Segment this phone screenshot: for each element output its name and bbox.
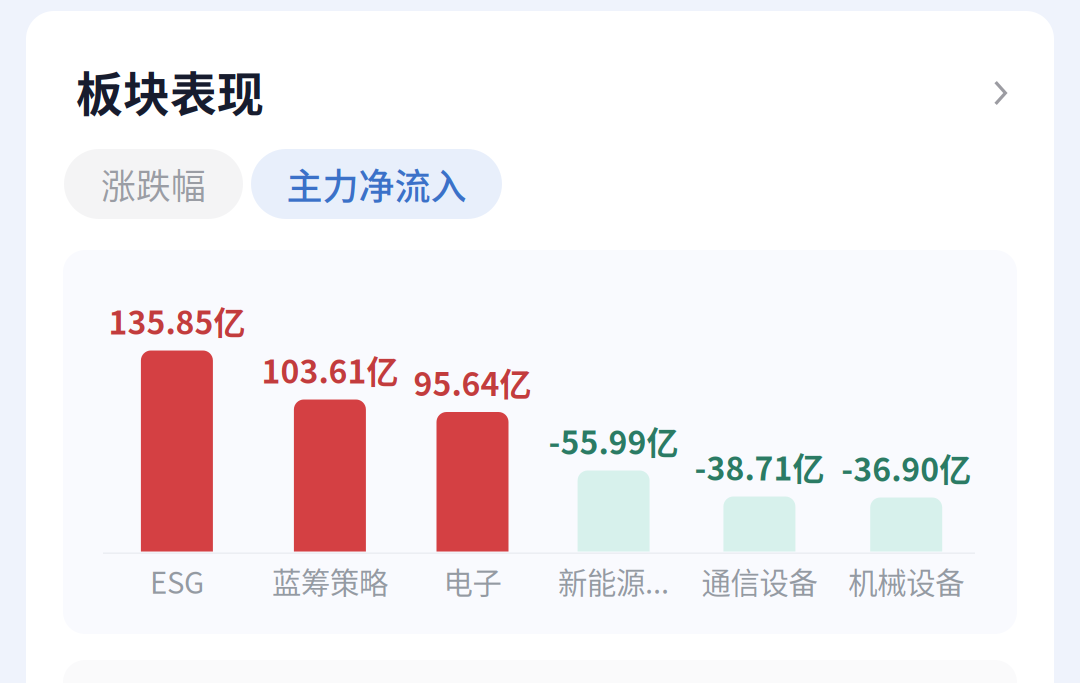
button[interactable]: -36.90亿	[834, 296, 978, 598]
staticText: 机械设备	[848, 560, 964, 602]
button[interactable]: 95.64亿	[400, 296, 544, 598]
button[interactable]: 103.61亿	[258, 296, 402, 598]
staticText: 135.85亿	[108, 297, 245, 344]
button[interactable]: -55.99亿	[542, 296, 686, 598]
button[interactable]: -38.71亿	[687, 296, 831, 598]
staticText: 电子	[443, 560, 501, 602]
staticText: -36.90亿	[841, 444, 971, 491]
staticText: ESG	[150, 560, 204, 602]
button[interactable]: 主力净流入	[251, 149, 502, 219]
staticText: -38.71亿	[694, 443, 824, 490]
button[interactable]: 135.85亿	[105, 296, 249, 598]
staticText: 板块表现	[76, 57, 264, 125]
staticText: -55.99亿	[549, 417, 679, 464]
staticText: 新能源...	[558, 560, 669, 602]
staticText: 蓝筹策略	[272, 560, 388, 602]
staticText: 95.64亿	[413, 359, 531, 405]
button[interactable]: 涨跌幅	[64, 149, 243, 219]
staticText: 103.61亿	[261, 346, 398, 393]
staticText: 涨跌幅	[101, 159, 206, 209]
staticText: 主力净流入	[286, 158, 466, 210]
staticText: 通信设备	[701, 560, 817, 602]
button[interactable]: 板块表现	[78, 53, 1008, 147]
